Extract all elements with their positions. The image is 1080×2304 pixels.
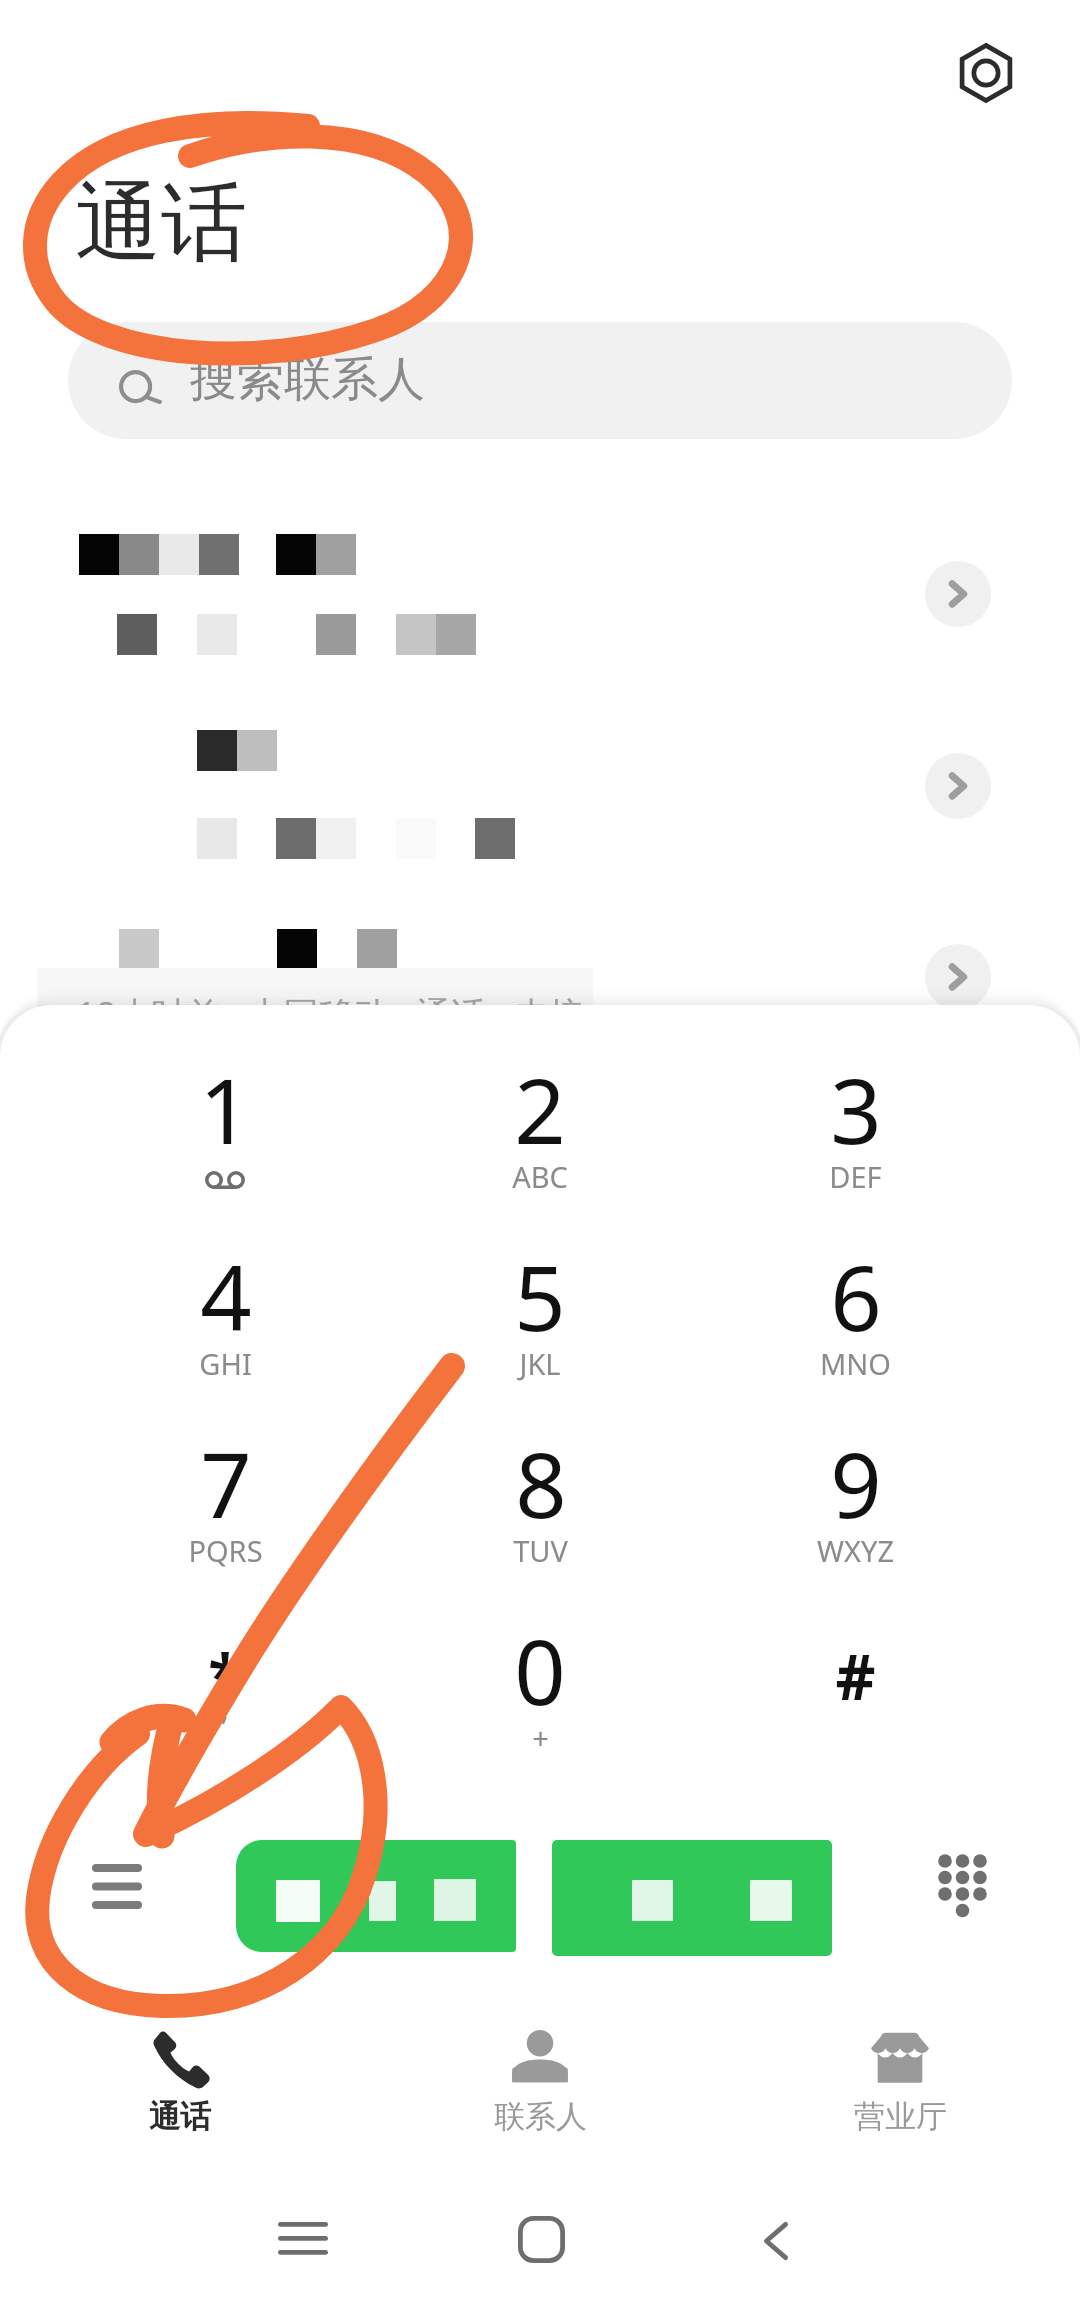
staticText: DEF [829,1157,882,1196]
button[interactable]: 营业厅 [720,2016,1080,2136]
button[interactable]: Details [925,561,991,627]
button[interactable]: Back [726,2191,826,2291]
staticText: MNO [820,1344,891,1383]
staticText: 0 [514,1609,566,1732]
staticText: 营业厅 [854,2097,947,2136]
button[interactable]: 4 [105,1235,345,1415]
staticText: * [208,1634,242,1718]
button[interactable]: 搜索联系人 [68,322,1012,439]
staticText: 6 [830,1235,882,1358]
button[interactable]: 1 [105,1048,345,1228]
staticText: 3 [830,1048,882,1171]
staticText: ABC [512,1157,568,1196]
button[interactable]: 6 [735,1235,975,1415]
button[interactable]: 3 [735,1048,975,1228]
staticText: 18小时前 · 中国移动 · 通话 · 未接 [76,990,584,1038]
staticText: 搜索联系人 [190,350,425,409]
button[interactable]: 2 [420,1048,660,1228]
staticText: 4 [200,1235,252,1358]
button[interactable]: 0 [420,1609,660,1789]
staticText: GHI [199,1344,252,1383]
button[interactable]: * [105,1609,345,1789]
button[interactable]: 9 [735,1422,975,1602]
staticText: 7 [200,1422,252,1545]
button[interactable]: Home [491,2189,591,2289]
button[interactable]: Call with SIM 2 [552,1840,832,1956]
button[interactable]: Call with SIM 1 [236,1840,516,1952]
button[interactable]: Details [925,753,991,819]
staticText: 8 [515,1422,567,1545]
staticText: # [835,1634,876,1718]
button[interactable]: 通话 [0,2016,360,2136]
button[interactable]: Call log menu [67,1836,167,1936]
staticText: 通话 [75,169,247,277]
staticText: JKL [519,1344,561,1383]
button[interactable]: Settings [936,23,1036,123]
staticText: WXYZ [817,1531,894,1570]
staticText: 通话 [149,2097,211,2136]
button[interactable]: 7 [105,1422,345,1602]
button[interactable]: # [735,1609,975,1789]
staticText: 2 [514,1048,566,1171]
button[interactable]: 5 [420,1235,660,1415]
staticText: + [532,1718,549,1757]
staticText: , [221,1689,229,1728]
button[interactable]: Recents [253,2188,353,2288]
staticText: 1 [199,1048,251,1171]
button[interactable]: Hide keypad [913,1836,1013,1936]
button[interactable]: Details [925,944,991,1010]
staticText: 9 [830,1422,882,1545]
staticText: TUV [513,1531,568,1570]
button[interactable]: 联系人 [360,2016,720,2136]
staticText: 联系人 [494,2097,587,2136]
staticText: PQRS [188,1531,263,1570]
staticText: 5 [514,1235,566,1358]
button[interactable]: 8 [420,1422,660,1602]
